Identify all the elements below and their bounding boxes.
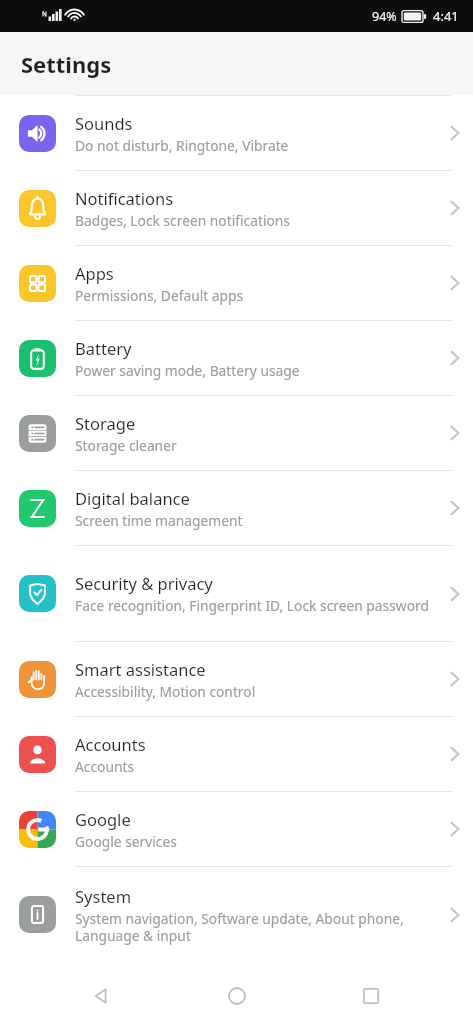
button[interactable]: Sounds [0,96,473,170]
button[interactable]: Back [70,968,134,1024]
staticText: Settings [21,49,112,79]
button[interactable]: Storage [0,396,473,470]
staticText: Storage cleaner [75,436,177,455]
button[interactable]: System [0,867,473,962]
button[interactable]: Smart assistance [0,642,473,716]
staticText: Google [75,808,131,830]
button[interactable]: Digital balance [0,471,473,545]
staticText: Google services [75,832,177,851]
staticText: Accounts [75,757,135,776]
staticText: Accessibility, Motion control [75,682,256,701]
button[interactable]: Security & privacy [0,546,473,641]
staticText: Sounds [75,112,133,134]
button[interactable]: Accounts [0,717,473,791]
staticText: Battery [75,337,132,359]
button[interactable]: Recent apps [339,968,403,1024]
staticText: Storage [75,412,136,434]
staticText: System [75,885,132,907]
staticText: 94% [372,8,397,25]
button[interactable]: Home [205,968,269,1024]
staticText: Smart assistance [75,658,206,680]
staticText: Notifications [75,187,174,209]
staticText: Apps [75,262,114,284]
staticText: Do not disturb, Ringtone, Vibrate [75,136,289,155]
staticText: Accounts [75,733,146,755]
staticText: Screen time management [75,511,243,530]
staticText: Face recognition, Fingerprint ID, Lock s… [75,596,429,615]
staticText: System navigation, Software update, Abou… [75,909,429,945]
button[interactable]: Battery [0,321,473,395]
staticText: 4:41 [433,7,459,25]
staticText: Security & privacy [75,572,213,594]
staticText: Digital balance [75,487,190,509]
staticText: Permissions, Default apps [75,286,244,305]
staticText: Power saving mode, Battery usage [75,361,300,380]
button[interactable]: Google [0,792,473,866]
button[interactable]: Notifications [0,171,473,245]
button[interactable]: Apps [0,246,473,320]
staticText: Badges, Lock screen notifications [75,211,290,230]
